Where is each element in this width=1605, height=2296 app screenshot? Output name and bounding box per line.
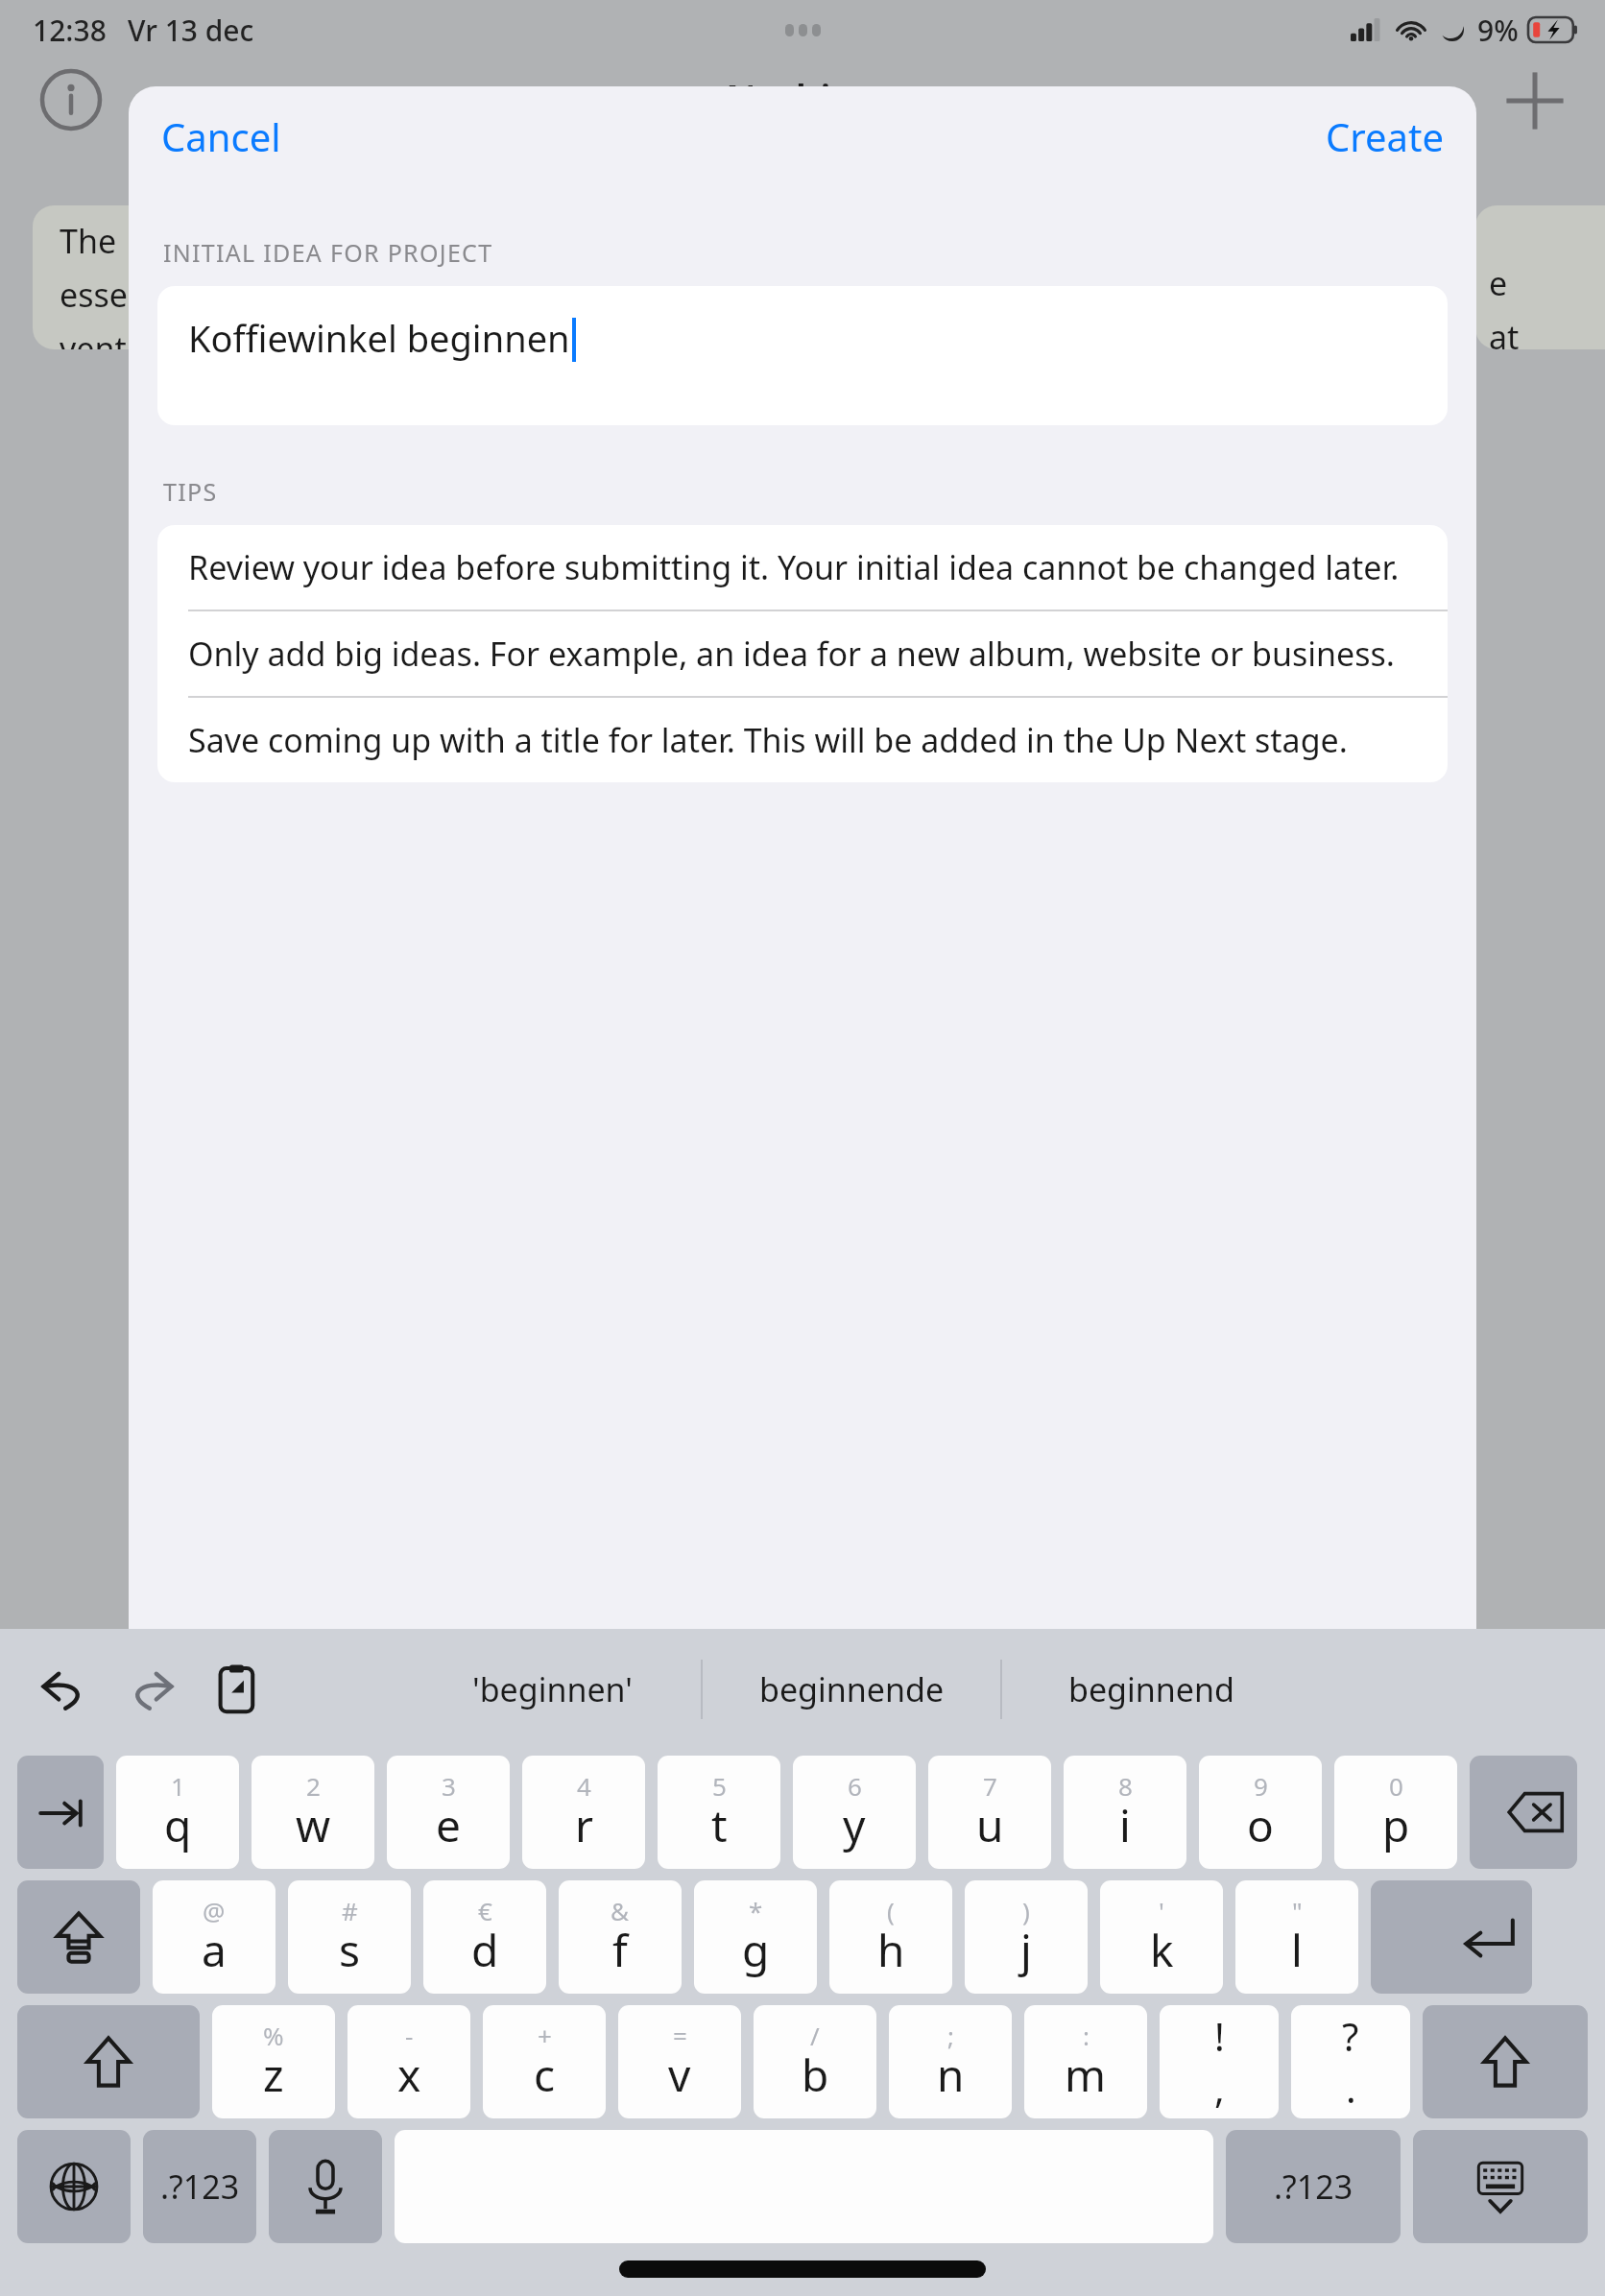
button[interactable]: Paste (202, 1654, 273, 1725)
staticText: esse (60, 273, 128, 317)
staticText: 9 (1254, 1769, 1268, 1803)
button[interactable]: - (347, 2005, 470, 2118)
button[interactable]: 8 (1064, 1756, 1186, 1869)
staticText: t (711, 1795, 728, 1855)
staticText: Only add big ideas. For example, an idea… (188, 632, 1395, 676)
staticText: @ (203, 1894, 226, 1927)
staticText: ; (947, 2019, 954, 2052)
button[interactable]: " (1235, 1880, 1358, 1994)
staticText: beginnende (759, 1667, 945, 1711)
button[interactable]: Shift (1423, 2005, 1588, 2118)
button[interactable]: 1 (116, 1756, 239, 1869)
staticText: g (742, 1920, 770, 1980)
staticText: q (164, 1795, 192, 1855)
staticText: x (397, 2045, 421, 2105)
staticText: Koffiewinkel beginnen (188, 313, 570, 363)
staticText: 5 (712, 1769, 727, 1803)
button[interactable]: 0 (1334, 1756, 1457, 1869)
button[interactable]: Dictate (269, 2130, 382, 2243)
staticText: Vr 13 dec (128, 11, 254, 50)
staticText: a (202, 1920, 227, 1980)
button[interactable]: Save coming up with a title for later. T… (157, 698, 1448, 782)
other: Hide keyboard (1413, 2130, 1588, 2243)
button[interactable]: Review your idea before submitting it. Y… (157, 525, 1448, 611)
button[interactable]: 5 (658, 1756, 780, 1869)
staticText: u (976, 1795, 1004, 1855)
button[interactable]: ! (1160, 2005, 1279, 2118)
button[interactable]: Add (1499, 65, 1570, 136)
staticText: y (843, 1795, 866, 1855)
button[interactable]: * (694, 1880, 817, 1994)
button[interactable]: Koffiewinkel beginnen (157, 286, 1448, 425)
button[interactable]: 9 (1199, 1756, 1322, 1869)
button[interactable]: ; (889, 2005, 1012, 2118)
staticText: 9% (1477, 11, 1519, 50)
staticText: . (1346, 2062, 1356, 2114)
staticText: beginnend (1068, 1667, 1234, 1711)
button[interactable]: ( (829, 1880, 952, 1994)
staticText: n (937, 2045, 965, 2105)
button[interactable]: Cancel (150, 99, 293, 174)
button[interactable]: Caps lock (17, 1880, 140, 1994)
button[interactable]: ' (1100, 1880, 1223, 1994)
button[interactable]: 2 (252, 1756, 374, 1869)
button[interactable]: Tab (17, 1756, 104, 1869)
staticText: TIPS (163, 475, 218, 508)
button[interactable]: 3 (387, 1756, 510, 1869)
staticText: j (1020, 1920, 1032, 1980)
staticText: r (575, 1795, 593, 1855)
button[interactable]: € (423, 1880, 546, 1994)
button[interactable]: Only add big ideas. For example, an idea… (157, 611, 1448, 698)
button[interactable]: & (559, 1880, 682, 1994)
button[interactable]: + (483, 2005, 606, 2118)
button[interactable]: 'beginnen' (403, 1629, 701, 1750)
other: Return (1371, 1880, 1532, 1994)
button[interactable]: Backspace (1470, 1756, 1577, 1869)
staticText: m (1065, 2045, 1107, 2105)
button[interactable]: ) (965, 1880, 1088, 1994)
button[interactable]: Redo (115, 1654, 186, 1725)
staticText: vent (60, 326, 127, 349)
staticText: + (538, 2019, 552, 2052)
button[interactable]: Undo (29, 1654, 100, 1725)
staticText: e (1489, 261, 1508, 305)
other: Tab (17, 1756, 104, 1869)
button[interactable]: Create (1314, 99, 1455, 174)
button[interactable]: Return (1371, 1880, 1532, 1994)
staticText: = (673, 2019, 687, 2052)
staticText: .?123 (1274, 2164, 1353, 2209)
button[interactable]: .?123 (1226, 2130, 1401, 2243)
button[interactable]: .?123 (143, 2130, 256, 2243)
button[interactable]: @ (153, 1880, 275, 1994)
button[interactable]: Hide keyboard (1413, 2130, 1588, 2243)
staticText: - (405, 2019, 414, 2052)
other: Next keyboard (17, 2130, 131, 2243)
staticText: e (436, 1795, 461, 1855)
button[interactable]: # (288, 1880, 411, 1994)
staticText: # (342, 1894, 358, 1927)
button[interactable]: = (618, 2005, 741, 2118)
button[interactable]: 6 (793, 1756, 916, 1869)
staticText: Cancel (161, 110, 281, 162)
button[interactable]: / (754, 2005, 876, 2118)
staticText: 8 (1118, 1769, 1133, 1803)
button[interactable]: ? (1291, 2005, 1410, 2118)
staticText: o (1247, 1795, 1274, 1855)
button[interactable]: % (212, 2005, 335, 2118)
button[interactable]: Next keyboard (17, 2130, 131, 2243)
other: Dictate (269, 2130, 382, 2243)
button[interactable]: Info (38, 67, 104, 132)
staticText: : (1083, 2019, 1090, 2052)
button[interactable]: Shift (17, 2005, 200, 2118)
other: Backspace (1470, 1756, 1577, 1869)
staticText: k (1150, 1920, 1174, 1980)
button[interactable]: 7 (928, 1756, 1051, 1869)
button[interactable]: 4 (522, 1756, 645, 1869)
button[interactable]: beginnend (1002, 1629, 1300, 1750)
staticText: p (1382, 1795, 1410, 1855)
staticText: i (1119, 1795, 1131, 1855)
staticText: 4 (577, 1769, 591, 1803)
button[interactable]: beginnende (703, 1629, 1000, 1750)
button[interactable]: : (1024, 2005, 1147, 2118)
